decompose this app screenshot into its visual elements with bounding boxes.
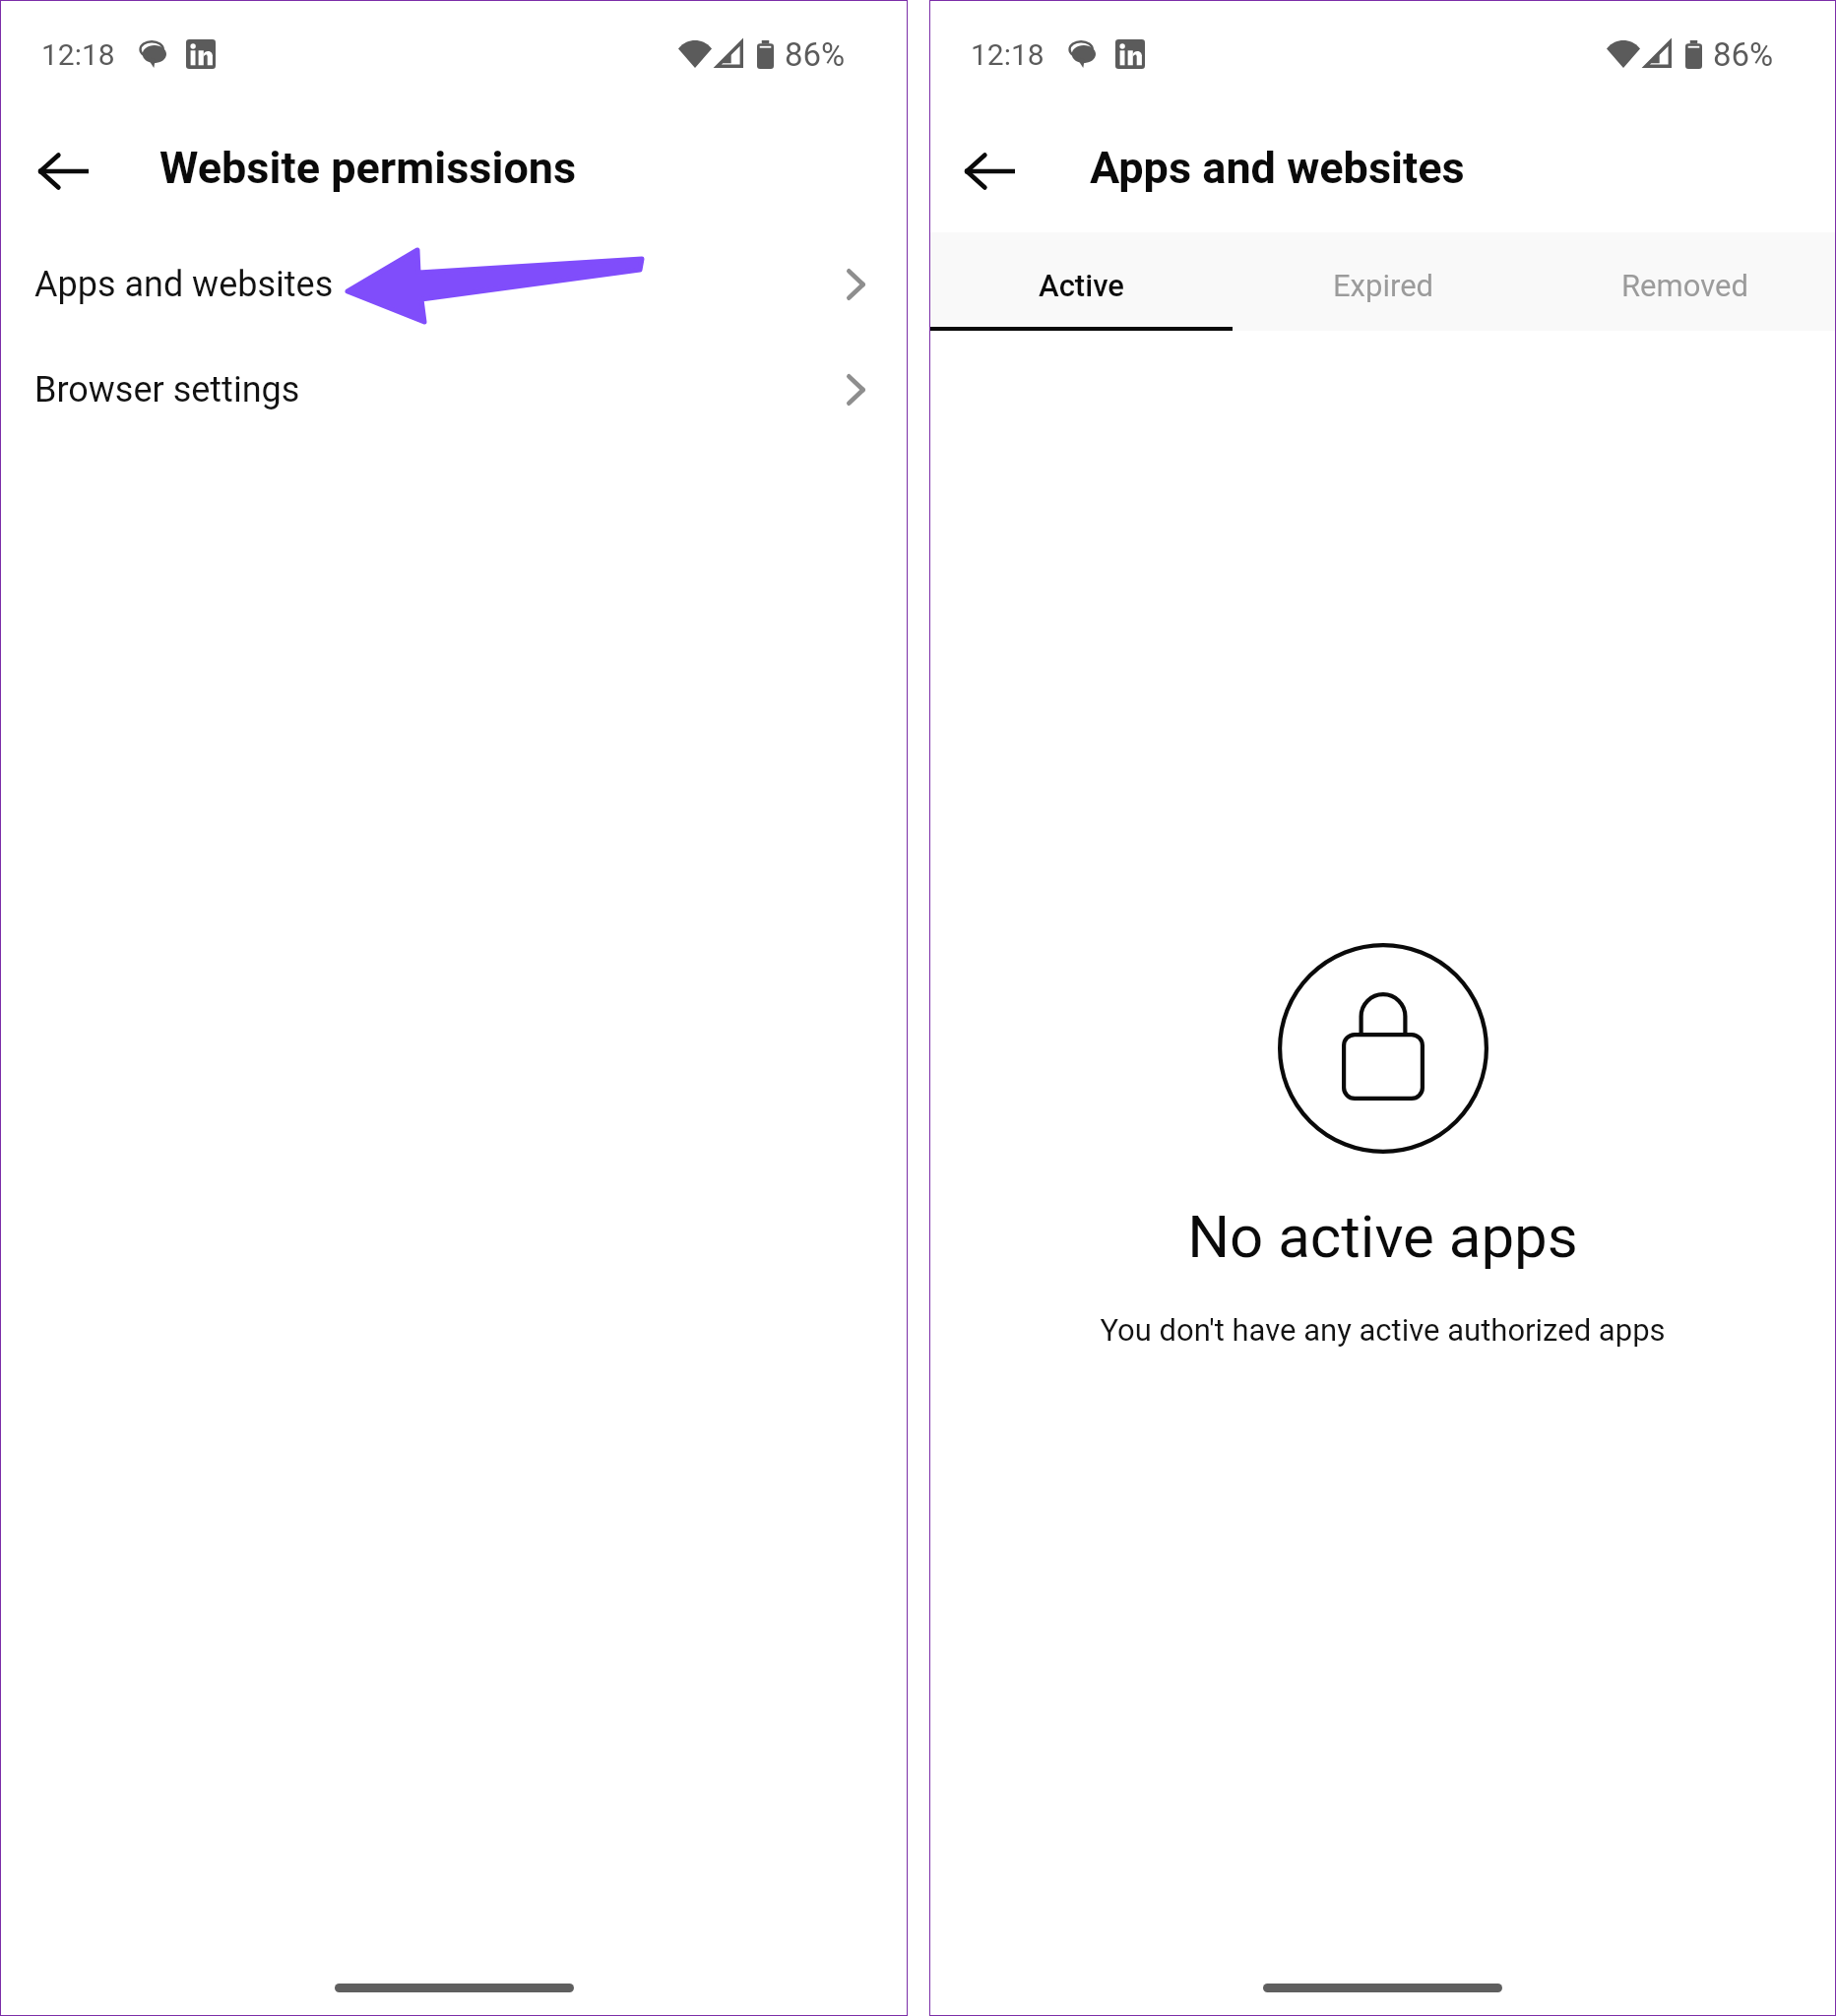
staticText: Active (1039, 268, 1124, 303)
staticText: Apps and websites (1090, 142, 1465, 194)
staticText: Browser settings (34, 369, 300, 410)
button[interactable]: Browser settings (1, 337, 907, 442)
button[interactable]: Removed (1534, 232, 1835, 331)
button[interactable]: Apps and websites (1, 231, 907, 337)
staticText: Removed (1621, 268, 1748, 303)
staticText: 12:18 (971, 37, 1045, 72)
button[interactable]: Active (930, 232, 1233, 331)
staticText: Website permissions (159, 142, 577, 194)
staticText: Apps and websites (34, 264, 334, 305)
staticText: 86% (785, 35, 846, 74)
staticText: 86% (1713, 35, 1774, 74)
staticText: No active apps (1187, 1202, 1578, 1271)
staticText: 12:18 (41, 37, 115, 72)
staticText: Expired (1333, 268, 1434, 303)
button[interactable]: Back (15, 132, 112, 211)
button[interactable]: Expired (1233, 232, 1534, 331)
staticText: You don't have any active authorized app… (1100, 1312, 1666, 1348)
button[interactable]: Back (941, 132, 1039, 211)
